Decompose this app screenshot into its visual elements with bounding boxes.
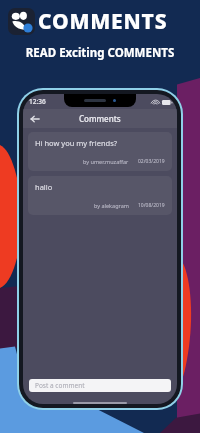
button[interactable]: hallo [28,176,172,215]
button[interactable]: Hi how you my friends? [28,132,172,171]
button[interactable]: Post a comment [29,379,171,392]
staticText: 02/03/2019 [138,158,165,165]
button[interactable]: App icon [8,8,35,35]
staticText: COMMENTS [38,7,168,36]
staticText: READ Exciting COMMENTS [0,45,200,61]
staticText: Comments [79,113,121,124]
staticText: Post a comment [35,381,85,390]
button[interactable]: Back [27,111,43,127]
staticText: by alekagram [94,202,129,209]
staticText: hallo [35,182,53,192]
staticText: Hi how you my friends? [35,138,117,148]
staticText: 12:36 [29,97,46,106]
staticText: by umer.muzaffar [83,158,129,165]
staticText: 10/08/2019 [138,202,165,209]
